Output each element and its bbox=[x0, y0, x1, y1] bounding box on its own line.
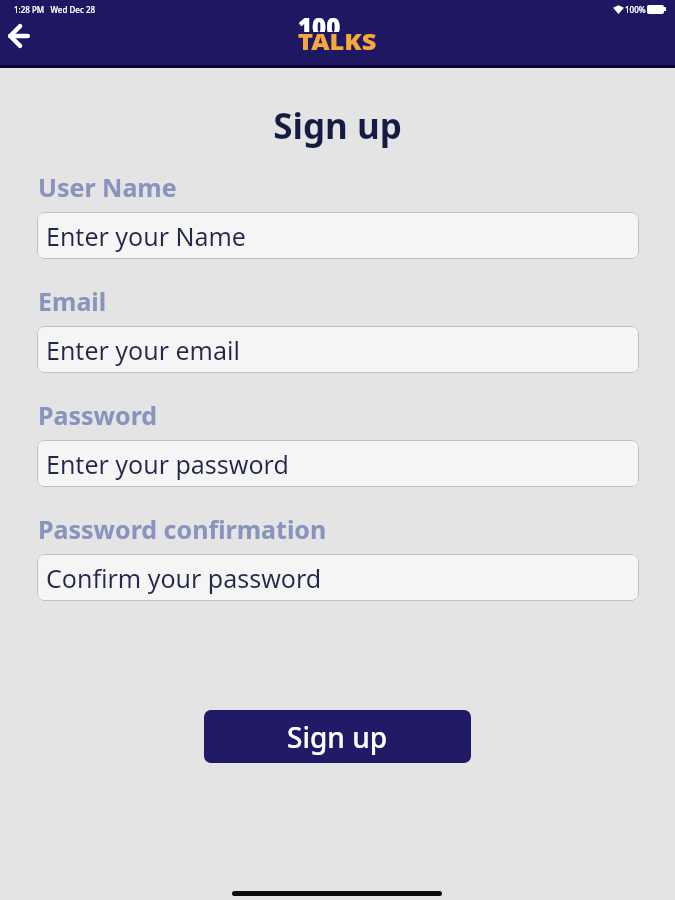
staticText: Sign up bbox=[0, 102, 675, 150]
staticText: 100% bbox=[625, 4, 646, 15]
button[interactable]: Enter your email bbox=[37, 326, 639, 373]
staticText: Confirm your password bbox=[46, 561, 322, 595]
staticText: Enter your email bbox=[46, 333, 240, 367]
staticText: User Name bbox=[38, 170, 177, 204]
button[interactable]: Confirm your password bbox=[37, 554, 639, 601]
staticText: TALKS bbox=[298, 26, 377, 56]
staticText: Email bbox=[38, 284, 107, 318]
button[interactable]: Sign up bbox=[204, 710, 471, 763]
button[interactable]: Enter your Name bbox=[37, 212, 639, 259]
staticText: Password confirmation bbox=[38, 512, 327, 546]
staticText: Enter your password bbox=[46, 447, 289, 481]
staticText: Password bbox=[38, 398, 158, 432]
staticText: Sign up bbox=[287, 718, 388, 756]
staticText: 1:28 PM Wed Dec 28 bbox=[14, 4, 96, 15]
button[interactable]: Back bbox=[0, 13, 42, 59]
staticText: 100 bbox=[298, 11, 341, 32]
staticText: Enter your Name bbox=[46, 219, 246, 253]
button[interactable]: Enter your password bbox=[37, 440, 639, 487]
